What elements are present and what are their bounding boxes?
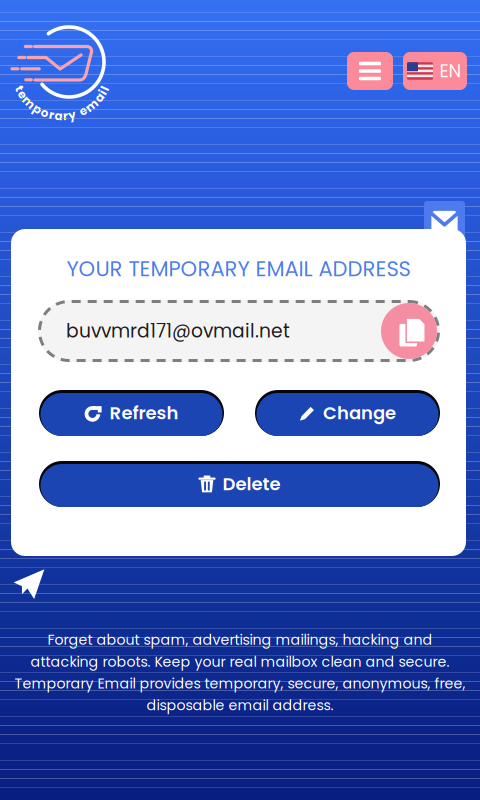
staticText: m xyxy=(22,94,35,111)
staticText: Refresh xyxy=(109,400,178,426)
button[interactable]: Copy email address xyxy=(381,303,437,359)
staticText: a xyxy=(54,107,62,124)
button[interactable]: Delete xyxy=(39,461,440,507)
staticText: r xyxy=(63,107,68,124)
staticText: attacking robots. Keep your real mailbox… xyxy=(30,652,449,672)
staticText: EN xyxy=(439,58,461,84)
staticText: y xyxy=(68,106,76,123)
staticText: o xyxy=(41,104,49,121)
staticText: l xyxy=(103,80,107,97)
staticText: buvvmrd171@ovmail.net xyxy=(66,318,290,344)
button[interactable]: Menu xyxy=(347,52,393,90)
button[interactable]: Refresh xyxy=(39,390,224,436)
staticText: a xyxy=(95,89,103,106)
staticText: disposable email address. xyxy=(146,695,333,715)
staticText: YOUR TEMPORARY EMAIL ADDRESS xyxy=(66,254,410,284)
staticText: t xyxy=(17,80,22,97)
staticText: Temporary Email provides temporary, secu… xyxy=(14,674,465,693)
staticText: Delete xyxy=(222,471,280,497)
staticText: p xyxy=(33,101,41,117)
staticText: e xyxy=(79,103,86,119)
button[interactable]: EN xyxy=(403,52,467,90)
staticText: e xyxy=(19,86,26,103)
staticText: m xyxy=(85,97,98,114)
staticText: Change xyxy=(323,400,396,426)
staticText: Forget about spam, advertising mailings,… xyxy=(47,630,432,650)
staticText: r xyxy=(49,106,54,123)
staticText: i xyxy=(101,84,105,101)
button[interactable]: Change xyxy=(255,390,440,436)
